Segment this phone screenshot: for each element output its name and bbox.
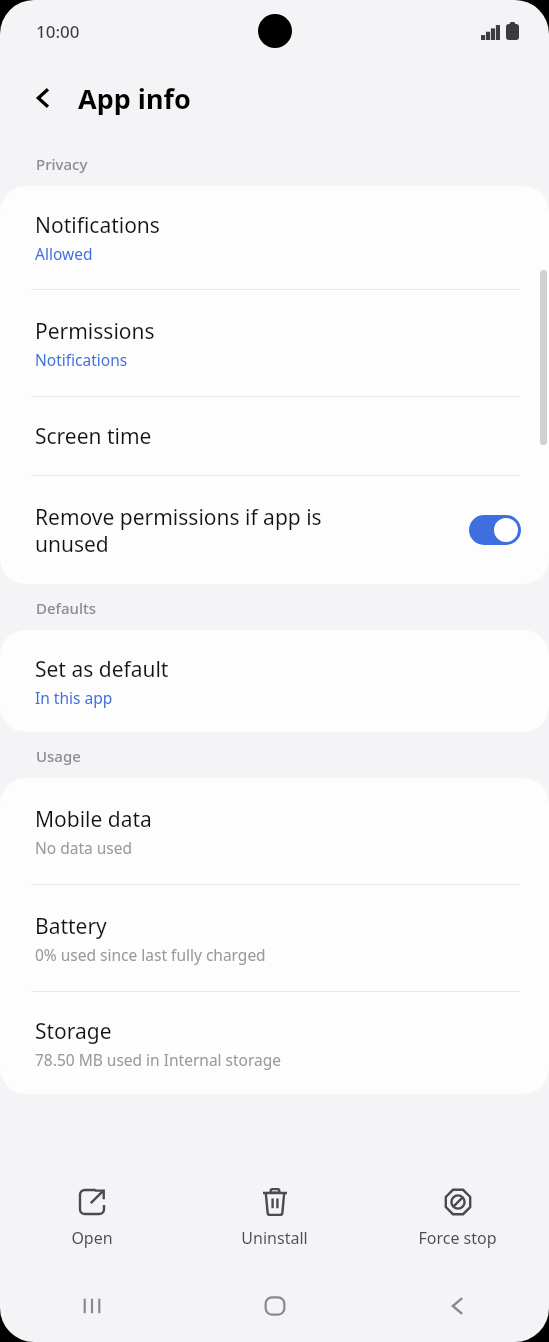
staticText: 78.50 MB used in Internal storage [35, 1049, 282, 1070]
staticText: Set as default [35, 655, 169, 684]
staticText: Mobile data [35, 805, 152, 834]
button[interactable]: Screen time [0, 397, 549, 475]
staticText: Notifications [35, 349, 128, 370]
button[interactable]: Force stop [366, 1165, 549, 1270]
staticText: No data used [35, 837, 133, 858]
button[interactable]: Open [0, 1165, 183, 1270]
staticText: Allowed [35, 243, 93, 264]
button[interactable]: Remove permissions toggle [469, 515, 521, 545]
button[interactable]: Mobile data [0, 778, 549, 884]
button[interactable]: Back [22, 76, 66, 120]
staticText: Notifications [35, 211, 160, 240]
button[interactable]: Battery [0, 885, 549, 991]
staticText: Permissions [35, 317, 155, 346]
button[interactable]: Remove permissions if app is unused [0, 476, 549, 584]
staticText: Remove permissions if app is unused [35, 503, 322, 558]
button[interactable]: Back [366, 1270, 549, 1342]
staticText: Battery [35, 912, 107, 941]
button[interactable]: Recents [0, 1270, 183, 1342]
button[interactable]: Storage [0, 992, 549, 1094]
button[interactable]: Uninstall [183, 1165, 366, 1270]
staticText: 0% used since last fully charged [35, 944, 266, 965]
staticText: Uninstall [241, 1227, 308, 1249]
staticText: Privacy [36, 154, 88, 174]
button[interactable]: Permissions [0, 290, 549, 396]
staticText: In this app [35, 687, 113, 708]
staticText: Storage [35, 1017, 112, 1046]
staticText: Usage [36, 746, 81, 766]
staticText: Open [71, 1227, 113, 1249]
button[interactable]: Notifications [0, 186, 549, 289]
staticText: App info [78, 80, 191, 117]
button[interactable]: Home [183, 1270, 366, 1342]
button[interactable]: Set as default [0, 630, 549, 732]
staticText: Force stop [418, 1227, 497, 1249]
staticText: 10:00 [36, 20, 80, 43]
staticText: Defaults [36, 598, 97, 618]
staticText: Screen time [35, 422, 152, 451]
